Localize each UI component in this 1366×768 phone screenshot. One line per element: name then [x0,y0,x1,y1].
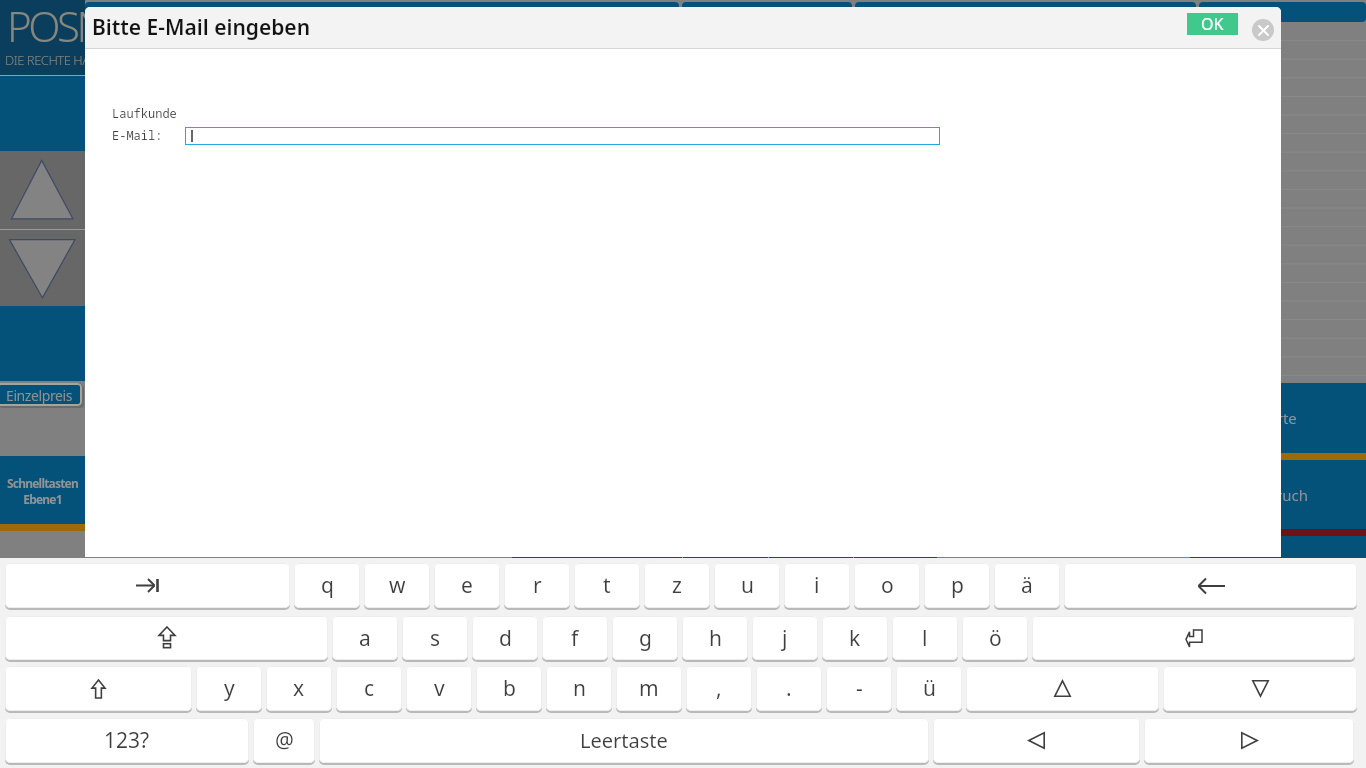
staticText: r [533,571,542,600]
staticText: v [434,674,445,703]
button[interactable]: Abbruch [1190,460,1366,529]
button[interactable]: a [332,616,398,660]
button[interactable]: q [294,563,360,608]
button[interactable]: Ruecktaste [1064,563,1357,608]
staticText: 123? [104,726,150,755]
button[interactable]: j [752,616,818,660]
button[interactable] [185,127,940,145]
button[interactable]: o [854,563,920,608]
button[interactable]: Nach oben blaettern [0,151,85,229]
button[interactable]: @ [253,718,315,763]
button[interactable] [1199,2,1366,22]
button[interactable]: ü [896,666,962,711]
staticText: j [782,624,788,653]
button[interactable]: - [826,666,892,711]
button[interactable]: w [364,563,430,608]
button[interactable]: b [476,666,542,711]
button[interactable]: Nach links [933,718,1140,763]
button[interactable]: v [406,666,472,711]
staticText: Einzelpreis [6,386,73,405]
staticText: Bitte E-Mail eingeben [92,13,311,42]
staticText: Leertaste [580,727,668,754]
button[interactable]: Schnelltasten Ebene1 [0,456,85,524]
button[interactable]: f [542,616,608,660]
button[interactable]: u [714,563,780,608]
staticText: a [359,624,371,653]
button[interactable]: Schliessen [1252,19,1274,41]
button[interactable]: Nach rechts [1144,718,1354,763]
staticText: Laufkunde [112,105,177,121]
button[interactable]: Nach unten blaettern [0,230,85,306]
button[interactable] [683,530,768,558]
staticText: i [814,571,820,600]
button[interactable]: i [784,563,850,608]
button[interactable]: Nach oben [966,666,1159,711]
button[interactable]: ä [994,563,1060,608]
button[interactable]: r [504,563,570,608]
staticText: @ [275,726,294,755]
button[interactable]: Umschalttaste [5,666,192,711]
staticText: g [639,624,652,653]
button[interactable]: ö [962,616,1028,660]
button[interactable]: d [472,616,538,660]
staticText: POSNET [7,0,85,54]
button[interactable]: s [402,616,468,660]
button[interactable] [512,530,682,558]
button[interactable]: z [644,563,710,608]
button[interactable]: Karte [1190,383,1366,453]
staticText: z [672,571,682,600]
button[interactable]: Leertaste [319,718,929,763]
button[interactable]: t [574,563,640,608]
button[interactable]: p [924,563,990,608]
button[interactable] [85,2,679,22]
staticText: . [786,674,792,703]
staticText: q [321,571,334,600]
staticText: t [603,571,611,600]
staticText: h [709,624,722,653]
button[interactable]: h [682,616,748,660]
staticText: x [293,674,305,703]
staticText: n [573,674,586,703]
staticText: - [856,674,863,703]
button[interactable]: Eingabetaste [1032,616,1355,660]
button[interactable]: c [336,666,402,711]
button[interactable]: g [612,616,678,660]
button[interactable]: m [616,666,682,711]
button[interactable]: Feststelltaste [5,616,328,660]
button[interactable]: Einzelpreis [0,383,82,406]
button[interactable]: Tabulator [5,563,290,608]
staticText: s [430,624,441,653]
button[interactable]: OK [1187,13,1238,35]
button[interactable]: x [266,666,332,711]
staticText: OK [1201,13,1224,35]
staticText: e [461,571,473,600]
button[interactable]: Nach unten [1163,666,1357,711]
staticText: y [224,674,235,703]
button[interactable] [682,2,852,22]
staticText: d [499,624,512,653]
staticText: E-Mail: [112,127,163,143]
button[interactable] [769,530,853,558]
button[interactable]: l [892,616,958,660]
staticText: k [849,624,861,653]
staticText: ä [1021,571,1033,600]
button[interactable] [854,530,937,558]
button[interactable] [855,2,1196,22]
staticText: u [741,571,754,600]
button[interactable]: y [196,666,262,711]
button[interactable]: k [822,616,888,660]
staticText: c [364,674,375,703]
staticText: w [389,571,406,600]
staticText: f [571,624,579,653]
staticText: m [639,674,659,703]
button[interactable]: 123? [5,718,249,763]
staticText: o [881,571,894,600]
button[interactable]: , [686,666,752,711]
button[interactable]: e [434,563,500,608]
staticText: p [951,571,964,600]
staticText: Abbruch [1248,485,1308,505]
staticText: DIE RECHTE HAND [5,51,85,69]
button[interactable]: . [756,666,822,711]
button[interactable]: n [546,666,612,711]
staticText: ü [923,674,936,703]
